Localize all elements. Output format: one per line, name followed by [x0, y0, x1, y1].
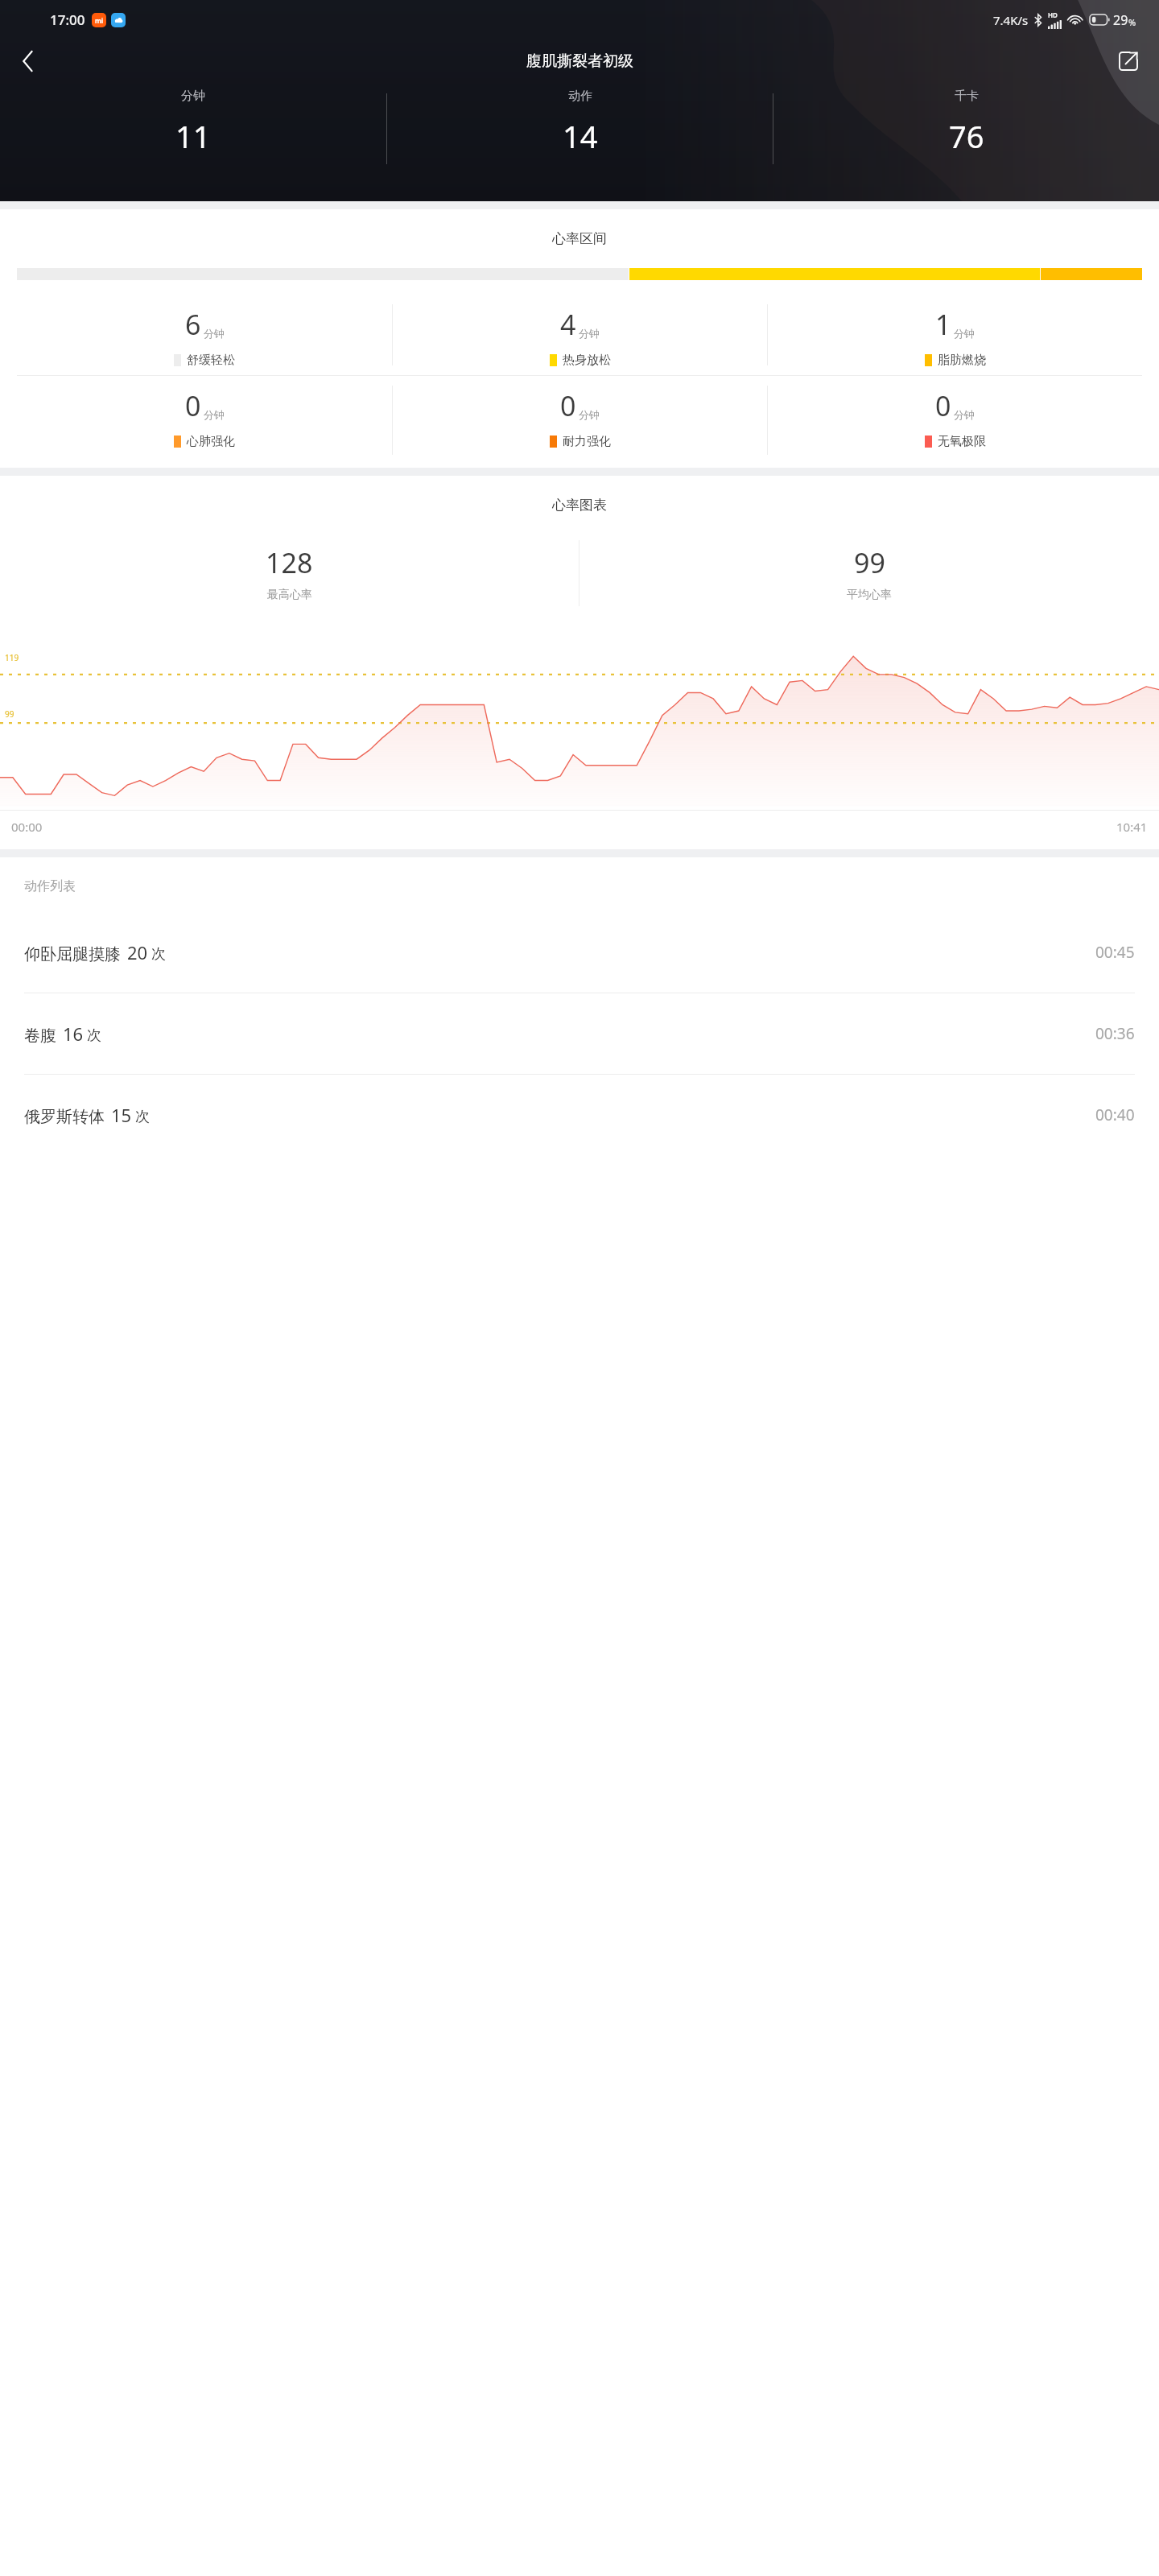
staticText: 4	[560, 306, 576, 343]
staticText: HD	[1048, 10, 1058, 19]
staticText: 1	[935, 306, 951, 343]
staticText: 心率区间	[0, 230, 1159, 247]
staticText: 分钟	[954, 408, 975, 421]
staticText: 分钟	[579, 327, 600, 340]
staticText: 20	[127, 940, 148, 964]
button[interactable]: 俄罗斯转体	[0, 1075, 1159, 1155]
staticText: 99	[5, 708, 14, 720]
staticText: mi	[95, 16, 104, 25]
staticText: 0	[560, 387, 576, 424]
button[interactable]: 卷腹	[0, 993, 1159, 1074]
staticText: 分钟	[954, 327, 975, 340]
staticText: 千卡	[955, 89, 979, 104]
staticText: 76	[949, 115, 984, 157]
button[interactable]: Share	[1109, 42, 1148, 80]
staticText: 脂肪燃烧	[938, 353, 986, 368]
staticText: 动作列表	[24, 878, 76, 894]
staticText: 耐力强化	[563, 434, 611, 449]
staticText: 29	[1113, 11, 1128, 29]
staticText: 15	[111, 1103, 132, 1127]
staticText: %	[1128, 16, 1136, 28]
staticText: 无氧极限	[938, 434, 986, 449]
staticText: 俄罗斯转体	[24, 1107, 105, 1127]
staticText: 仰卧屈腿摸膝	[24, 944, 121, 964]
staticText: 热身放松	[563, 353, 611, 368]
button[interactable]: 仰卧屈腿摸膝	[0, 912, 1159, 993]
staticText: 分钟	[579, 408, 600, 421]
staticText: 心率图表	[0, 497, 1159, 514]
staticText: 6	[185, 306, 201, 343]
staticText: 舒缓轻松	[187, 353, 235, 368]
staticText: 0	[935, 387, 951, 424]
staticText: 动作	[568, 89, 592, 104]
staticText: 00:45	[1095, 942, 1135, 963]
staticText: 分钟	[204, 327, 225, 340]
staticText: 最高心率	[267, 588, 312, 602]
staticText: 次	[87, 1026, 101, 1045]
button[interactable]: 6	[17, 295, 392, 368]
staticText: 分钟	[204, 408, 225, 421]
staticText: 17:00	[50, 10, 85, 29]
staticText: 16	[63, 1022, 84, 1046]
button[interactable]: 4	[393, 295, 767, 368]
staticText: 10:41	[1116, 819, 1148, 835]
button[interactable]: Back	[8, 42, 47, 80]
staticText: 7.4K/s	[993, 12, 1029, 28]
button[interactable]: 1	[768, 295, 1142, 368]
staticText: 心肺强化	[187, 434, 235, 449]
staticText: 0	[185, 387, 201, 424]
staticText: 14	[563, 115, 598, 157]
staticText: 平均心率	[847, 588, 892, 602]
staticText: 卷腹	[24, 1026, 56, 1046]
staticText: 分钟	[181, 89, 205, 104]
staticText: 11	[175, 115, 211, 157]
staticText: 128	[266, 544, 313, 581]
staticText: 00:36	[1095, 1023, 1135, 1044]
staticText: 119	[5, 652, 19, 663]
staticText: 腹肌撕裂者初级	[526, 52, 633, 71]
button[interactable]: 0	[17, 376, 392, 449]
button[interactable]: 0	[768, 376, 1142, 449]
staticText: 99	[854, 544, 885, 581]
staticText: 次	[135, 1108, 150, 1126]
staticText: 00:40	[1095, 1104, 1135, 1125]
button[interactable]: 0	[393, 376, 767, 449]
staticText: 次	[151, 945, 166, 964]
staticText: 00:00	[11, 819, 43, 835]
